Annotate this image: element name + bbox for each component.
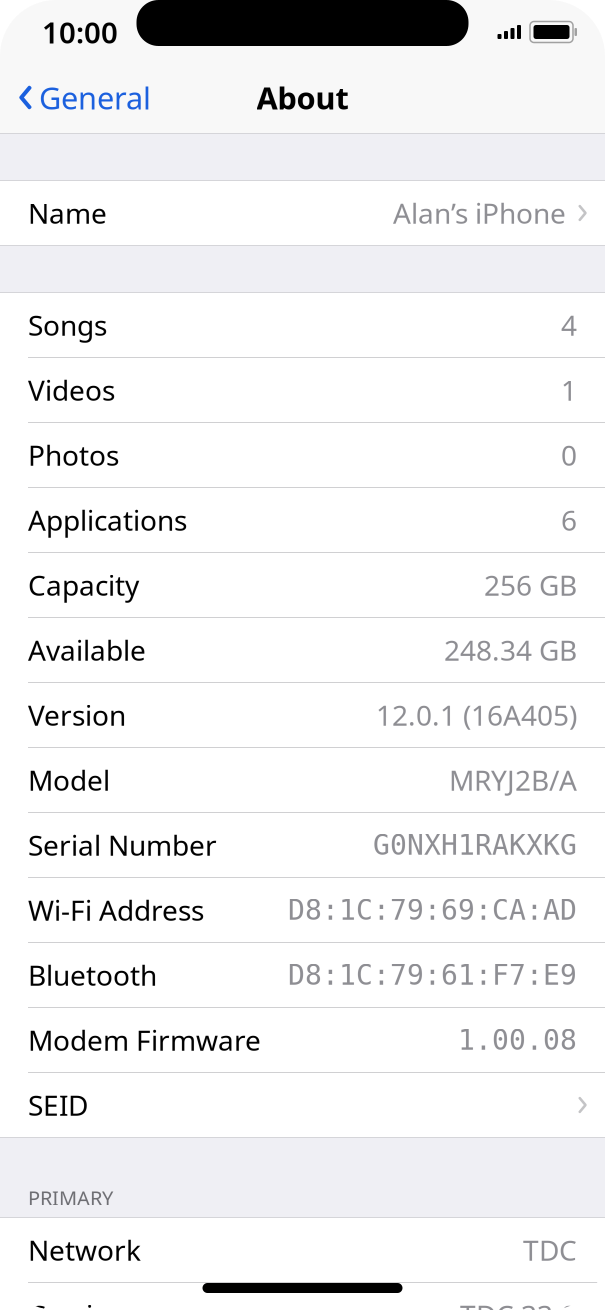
staticText: 4 (561, 306, 577, 344)
button[interactable]: Photos (0, 423, 605, 487)
staticText: D8:1C:79:61:F7:E9 (288, 959, 577, 991)
button[interactable]: Wi-Fi Address (0, 878, 605, 942)
staticText: D8:1C:79:69:CA:AD (288, 894, 577, 926)
staticText: 6 (561, 501, 577, 539)
staticText: Name (28, 194, 107, 232)
button[interactable]: Model (0, 748, 605, 812)
button[interactable]: Version (0, 683, 605, 747)
staticText: 10:00 (42, 12, 118, 51)
staticText: 1.00.08 (458, 1024, 577, 1056)
staticText: TDC (523, 1231, 577, 1269)
staticText: Songs (28, 306, 107, 344)
staticText: SEID (28, 1086, 88, 1124)
button[interactable]: SEID (0, 1073, 605, 1137)
button[interactable]: Name (0, 181, 605, 245)
button[interactable]: Bluetooth (0, 943, 605, 1007)
button[interactable]: Capacity (0, 553, 605, 617)
staticText: Serial Number (28, 826, 217, 864)
button[interactable]: Network (0, 1218, 605, 1282)
staticText: Network (28, 1231, 141, 1269)
staticText: 1 (561, 371, 577, 409)
staticText: G0NXH1RAKXKG (373, 829, 577, 861)
staticText: Alan’s iPhone (393, 194, 566, 232)
staticText: 0 (561, 436, 577, 474)
staticText: Applications (28, 501, 187, 539)
staticText: Modem Firmware (28, 1021, 261, 1059)
staticText: MRYJ2B/A (449, 761, 577, 799)
staticText: Carrier (28, 1296, 121, 1310)
button[interactable]: Available (0, 618, 605, 682)
button[interactable]: Songs (0, 293, 605, 357)
staticText: 256 GB (484, 566, 577, 604)
staticText: Available (28, 631, 146, 669)
staticText: PRIMARY (28, 1184, 113, 1211)
button[interactable]: Videos (0, 358, 605, 422)
staticText: General (39, 77, 151, 118)
button[interactable]: Serial Number (0, 813, 605, 877)
staticText: About (256, 77, 348, 118)
staticText: Capacity (28, 566, 139, 604)
staticText: 248.34 GB (444, 631, 577, 669)
staticText: Bluetooth (28, 956, 157, 994)
staticText: Videos (28, 371, 115, 409)
button[interactable]: Carrier (0, 1283, 605, 1310)
staticText: 12.0.1 (16A405) (376, 696, 577, 734)
button[interactable]: Modem Firmware (0, 1008, 605, 1072)
button[interactable]: General (0, 69, 163, 125)
staticText: Photos (28, 436, 119, 474)
staticText: Version (28, 696, 126, 734)
button[interactable]: Applications (0, 488, 605, 552)
staticText: TDC 33.0 (460, 1296, 577, 1310)
staticText: Wi-Fi Address (28, 891, 204, 929)
staticText: Model (28, 761, 110, 799)
